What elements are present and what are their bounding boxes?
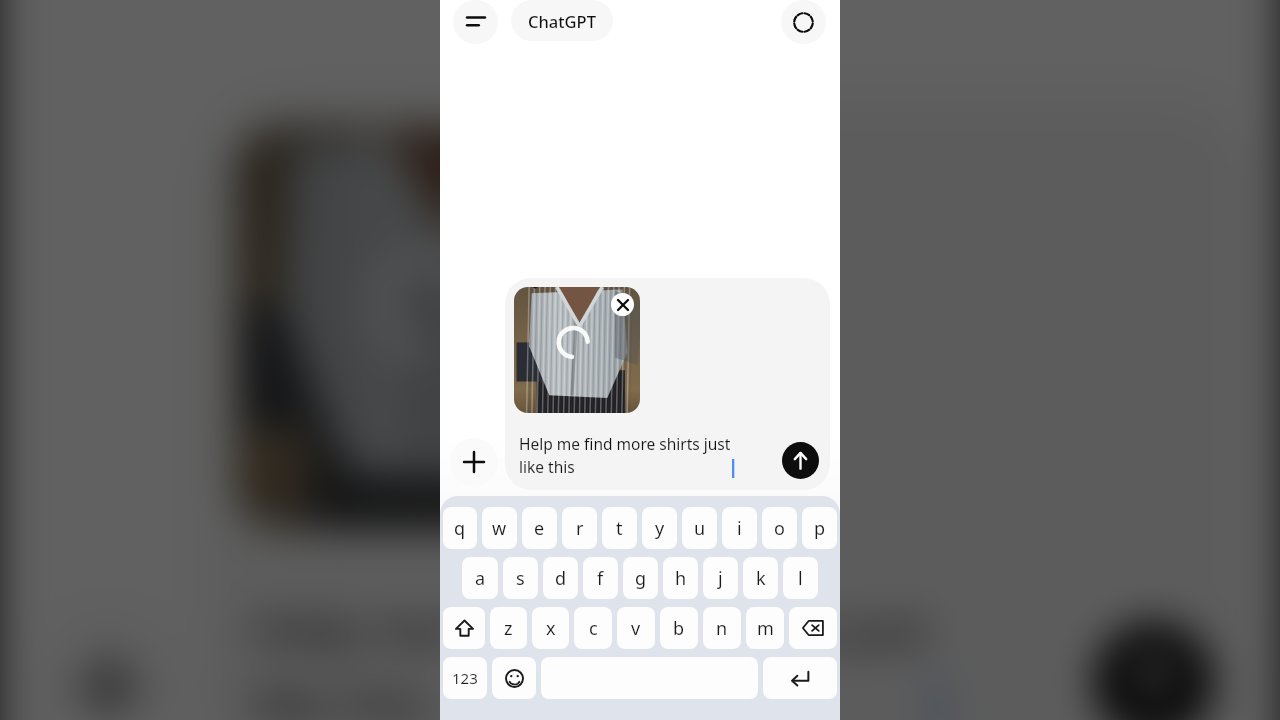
staticText: d bbox=[555, 566, 567, 591]
staticText: g bbox=[635, 566, 647, 591]
button[interactable]: m bbox=[746, 607, 784, 649]
staticText: Help me find more shirts just like this bbox=[519, 433, 731, 478]
button[interactable]: g bbox=[623, 557, 658, 599]
button[interactable]: Remove image bbox=[208, 98, 1248, 720]
button[interactable]: c bbox=[574, 607, 612, 649]
button[interactable]: i bbox=[722, 507, 757, 549]
staticText: r bbox=[576, 516, 584, 541]
staticText: a bbox=[475, 566, 486, 591]
button[interactable]: z bbox=[490, 607, 527, 649]
staticText: ChatGPT bbox=[528, 10, 596, 32]
button[interactable]: j bbox=[703, 557, 738, 599]
button[interactable]: w bbox=[482, 507, 517, 549]
button[interactable]: a bbox=[462, 557, 498, 599]
button[interactable]: Backspace bbox=[789, 607, 837, 649]
button[interactable]: l bbox=[783, 557, 818, 599]
staticText: y bbox=[655, 516, 665, 541]
button[interactable]: n bbox=[703, 607, 741, 649]
button[interactable]: k bbox=[743, 557, 778, 599]
button[interactable]: r bbox=[562, 507, 597, 549]
staticText: e bbox=[534, 516, 545, 541]
button[interactable]: 123 bbox=[443, 657, 487, 699]
button[interactable]: d bbox=[543, 557, 578, 599]
staticText: u bbox=[694, 516, 706, 541]
button[interactable]: t bbox=[602, 507, 637, 549]
button[interactable]: p bbox=[802, 507, 837, 549]
button[interactable]: x bbox=[532, 607, 569, 649]
staticText: n bbox=[716, 616, 728, 641]
staticText: Help me find more shirts just like this bbox=[253, 594, 931, 720]
button[interactable]: Send bbox=[1094, 622, 1213, 720]
button[interactable]: f bbox=[583, 557, 618, 599]
button[interactable]: Enter bbox=[763, 657, 837, 699]
staticText: j bbox=[718, 566, 723, 591]
button[interactable]: b bbox=[660, 607, 698, 649]
button[interactable]: s bbox=[503, 557, 538, 599]
button[interactable]: Remove image bbox=[611, 293, 634, 316]
staticText: l bbox=[798, 566, 803, 591]
button[interactable]: v bbox=[617, 607, 655, 649]
staticText: t bbox=[616, 516, 623, 541]
staticText: b bbox=[673, 616, 685, 641]
button[interactable]: Temporary chat bbox=[781, 0, 826, 44]
staticText: z bbox=[504, 616, 513, 641]
staticText: h bbox=[675, 566, 687, 591]
button[interactable]: Emoji bbox=[492, 657, 536, 699]
button[interactable]: q bbox=[443, 507, 477, 549]
button[interactable]: y bbox=[642, 507, 677, 549]
button[interactable]: Remove image bbox=[505, 278, 830, 490]
button[interactable]: o bbox=[762, 507, 797, 549]
staticText: v bbox=[631, 616, 641, 641]
staticText: m bbox=[757, 616, 774, 641]
button[interactable]: Send bbox=[782, 442, 819, 479]
staticText: w bbox=[492, 516, 507, 541]
staticText: k bbox=[756, 566, 766, 591]
button[interactable]: Add attachment bbox=[32, 610, 186, 720]
button[interactable]: u bbox=[682, 507, 717, 549]
button[interactable]: h bbox=[663, 557, 698, 599]
button[interactable]: Menu bbox=[453, 0, 498, 44]
button[interactable]: Add attachment bbox=[450, 438, 498, 486]
staticText: i bbox=[737, 516, 742, 541]
button[interactable]: e bbox=[522, 507, 557, 549]
staticText: f bbox=[597, 566, 604, 591]
staticText: q bbox=[454, 516, 466, 541]
staticText: o bbox=[774, 516, 785, 541]
button[interactable]: ChatGPT bbox=[511, 0, 613, 41]
staticText: s bbox=[516, 566, 525, 591]
staticText: p bbox=[814, 516, 826, 541]
button[interactable]: Shift bbox=[443, 607, 485, 649]
staticText: 123 bbox=[452, 668, 478, 688]
staticText: x bbox=[546, 616, 556, 641]
staticText: c bbox=[589, 616, 598, 641]
